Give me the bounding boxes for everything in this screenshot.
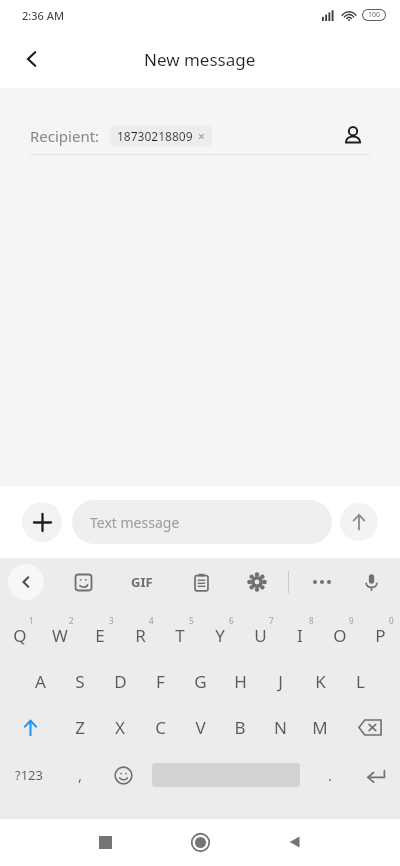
button[interactable]: L [340,659,380,703]
staticText: E [95,624,105,647]
staticText: 0 [389,615,394,626]
button[interactable]: Q [0,613,40,657]
button[interactable]: GIF [122,562,162,602]
staticText: Y [215,624,225,647]
staticText: 6 [229,615,234,626]
staticText: B [234,716,246,739]
button[interactable]: Enter [352,752,400,798]
button[interactable]: , [58,752,102,798]
button[interactable]: 18730218809 [110,125,212,147]
button[interactable]: O [320,613,360,657]
staticText: × [198,128,205,144]
button[interactable]: Back [272,819,318,865]
button[interactable]: Z [60,705,100,749]
staticText: 1 [29,615,34,626]
staticText: J [278,670,283,693]
staticText: Recipient: [30,126,100,146]
staticText: 9 [349,615,354,626]
button[interactable]: ?123 [0,752,58,798]
button[interactable]: I [280,613,320,657]
button[interactable]: C [140,705,180,749]
staticText: GIF [131,573,153,591]
button[interactable]: Collapse toolbar [8,564,44,600]
staticText: Q [13,624,27,647]
button[interactable]: Choose contact [336,119,370,153]
button[interactable]: . [308,752,352,798]
staticText: H [234,670,247,693]
button[interactable]: Shift [0,705,60,749]
staticText: D [114,670,127,693]
staticText: 100 [368,10,381,20]
button[interactable]: E [80,613,120,657]
button[interactable]: S [60,659,100,703]
staticText: N [274,716,287,739]
staticText: ?123 [15,766,43,784]
button[interactable]: Add attachment [22,502,62,542]
button[interactable]: A [20,659,60,703]
button[interactable]: Home [177,819,223,865]
button[interactable]: Back [10,37,54,81]
staticText: F [156,670,165,693]
staticText: New message [144,48,256,71]
staticText: , [78,765,83,785]
staticText: C [155,716,166,739]
staticText: R [135,624,146,647]
staticText: L [356,670,365,693]
button[interactable]: G [180,659,220,703]
button[interactable]: U [240,613,280,657]
staticText: 5 [189,615,194,626]
staticText: G [194,670,207,693]
button[interactable]: More options [305,565,339,599]
button[interactable]: J [260,659,300,703]
staticText: 2 [69,615,74,626]
button[interactable]: K [300,659,340,703]
staticText: 4 [149,615,154,626]
staticText: P [375,624,386,647]
staticText: 2:36 AM [22,8,65,23]
button[interactable]: B [220,705,260,749]
staticText: A [35,670,46,693]
staticText: U [254,624,267,647]
button[interactable]: Stickers [66,565,100,599]
staticText: Z [75,716,85,739]
staticText: 18730218809 [117,128,193,144]
button[interactable]: W [40,613,80,657]
staticText: Text message [90,513,180,532]
staticText: V [195,716,206,739]
staticText: 8 [309,615,314,626]
button[interactable]: H [220,659,260,703]
staticText: W [52,624,68,647]
staticText: K [315,670,326,693]
button[interactable]: F [140,659,180,703]
staticText: O [333,624,347,647]
staticText: I [297,624,303,647]
staticText: X [115,716,125,739]
button[interactable]: P [360,613,400,657]
button[interactable]: Backspace [340,705,400,749]
button[interactable]: Settings [240,565,274,599]
button[interactable]: Y [200,613,240,657]
button[interactable]: D [100,659,140,703]
button[interactable]: R [120,613,160,657]
staticText: 7 [269,615,274,626]
button[interactable]: Emoji [102,752,144,798]
staticText: 3 [109,615,114,626]
button[interactable]: Clipboard [184,565,218,599]
staticText: S [75,670,85,693]
staticText: T [175,624,185,647]
button[interactable]: X [100,705,140,749]
button[interactable]: Voice input [352,563,390,601]
button[interactable]: T [160,613,200,657]
staticText: M [312,716,328,739]
button[interactable]: V [180,705,220,749]
button[interactable]: Text message [72,500,332,544]
button[interactable]: Send [340,503,378,541]
button[interactable]: Recent apps [82,819,128,865]
staticText: . [328,765,333,785]
button[interactable]: N [260,705,300,749]
button[interactable]: M [300,705,340,749]
